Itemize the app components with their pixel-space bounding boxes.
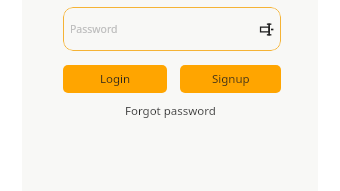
- button[interactable]: Login: [63, 65, 167, 93]
- staticText: Forgot password: [125, 103, 216, 119]
- button[interactable]: Forgot password: [121, 102, 220, 120]
- staticText: Password: [70, 22, 257, 36]
- staticText: Signup: [212, 71, 250, 87]
- button[interactable]: Toggle password visibility: [257, 20, 275, 38]
- button[interactable]: Password: [63, 7, 281, 51]
- button[interactable]: Signup: [180, 65, 281, 93]
- staticText: Login: [100, 71, 131, 87]
